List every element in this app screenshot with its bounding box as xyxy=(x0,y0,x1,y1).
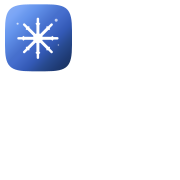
button[interactable]: App icon xyxy=(5,4,72,71)
